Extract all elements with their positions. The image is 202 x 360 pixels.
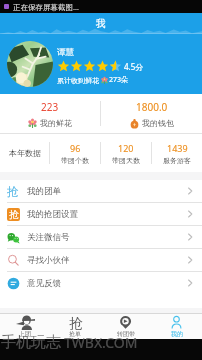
staticText: 抢: [7, 184, 19, 198]
staticText: 本年数据: [9, 148, 41, 158]
button[interactable]: 寻找小伙伴: [0, 249, 202, 271]
button[interactable]: 抢: [0, 180, 202, 202]
staticText: 带团天数: [112, 156, 140, 165]
staticText: TWBX.COM: [64, 339, 138, 352]
staticText: 96: [70, 142, 81, 154]
button[interactable]: 本年数据: [0, 134, 49, 172]
button[interactable]: 96: [50, 134, 100, 172]
staticText: 我: [96, 17, 106, 30]
staticText: 手机玩志: [1, 333, 61, 339]
button[interactable]: 我的: [151, 314, 202, 339]
staticText: 手机玩志: [1, 339, 61, 352]
staticText: 累计收到鲜花: [57, 76, 99, 85]
staticText: 我的鲜花: [40, 118, 72, 128]
staticText: 我的: [171, 330, 183, 338]
button[interactable]: 上团: [0, 314, 50, 339]
button[interactable]: 120: [101, 134, 151, 172]
staticText: 关注微信号: [27, 232, 70, 243]
button[interactable]: 转团带: [100, 314, 151, 339]
staticText: 抢: [69, 315, 83, 330]
staticText: 抢: [9, 208, 19, 221]
staticText: 1800.0: [136, 100, 168, 114]
staticText: 正在保存屏幕截图…: [13, 2, 79, 12]
staticText: 我的钱包: [142, 118, 174, 128]
staticText: 我的团单: [27, 186, 61, 197]
staticText: 273朵: [109, 75, 129, 85]
button[interactable]: Avatar: [7, 41, 53, 87]
button[interactable]: 抢: [0, 203, 202, 225]
button[interactable]: 抢: [50, 314, 100, 339]
staticText: 我的抢团设置: [27, 209, 78, 220]
staticText: 120: [118, 142, 134, 154]
button[interactable]: 意见反馈: [0, 272, 202, 294]
button[interactable]: 1439: [152, 134, 202, 172]
staticText: 抢单: [69, 330, 81, 338]
staticText: 带团个数: [61, 156, 89, 165]
staticText: 上团: [19, 330, 31, 338]
staticText: TWBX.COM: [64, 333, 138, 339]
button[interactable]: 关注微信号: [0, 226, 202, 248]
staticText: 1439: [167, 142, 188, 154]
staticText: 223: [41, 100, 59, 114]
staticText: 转团带: [117, 330, 135, 338]
staticText: 意见反馈: [27, 278, 61, 289]
staticText: 服务游客: [163, 156, 191, 165]
button[interactable]: 223: [0, 94, 100, 133]
staticText: 谭慧: [57, 47, 74, 58]
button[interactable]: 1800.0: [101, 94, 202, 133]
staticText: 寻找小伙伴: [27, 255, 70, 266]
staticText: 4.5分: [124, 61, 144, 72]
